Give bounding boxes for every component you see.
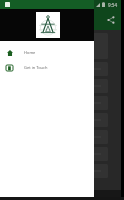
button[interactable]: Share bbox=[104, 13, 118, 27]
button[interactable]: Home bbox=[0, 45, 94, 60]
button[interactable] bbox=[4, 79, 108, 93]
button[interactable]: Get in Touch bbox=[0, 60, 94, 75]
button[interactable] bbox=[4, 164, 108, 178]
staticText: Home bbox=[24, 50, 36, 55]
button[interactable] bbox=[4, 147, 108, 161]
staticText: Get in Touch bbox=[24, 65, 48, 70]
button[interactable] bbox=[4, 33, 108, 59]
staticText: 9:54 bbox=[108, 2, 118, 8]
button[interactable] bbox=[4, 62, 108, 76]
button[interactable] bbox=[4, 113, 108, 127]
button[interactable] bbox=[4, 96, 108, 110]
button[interactable] bbox=[4, 130, 108, 144]
